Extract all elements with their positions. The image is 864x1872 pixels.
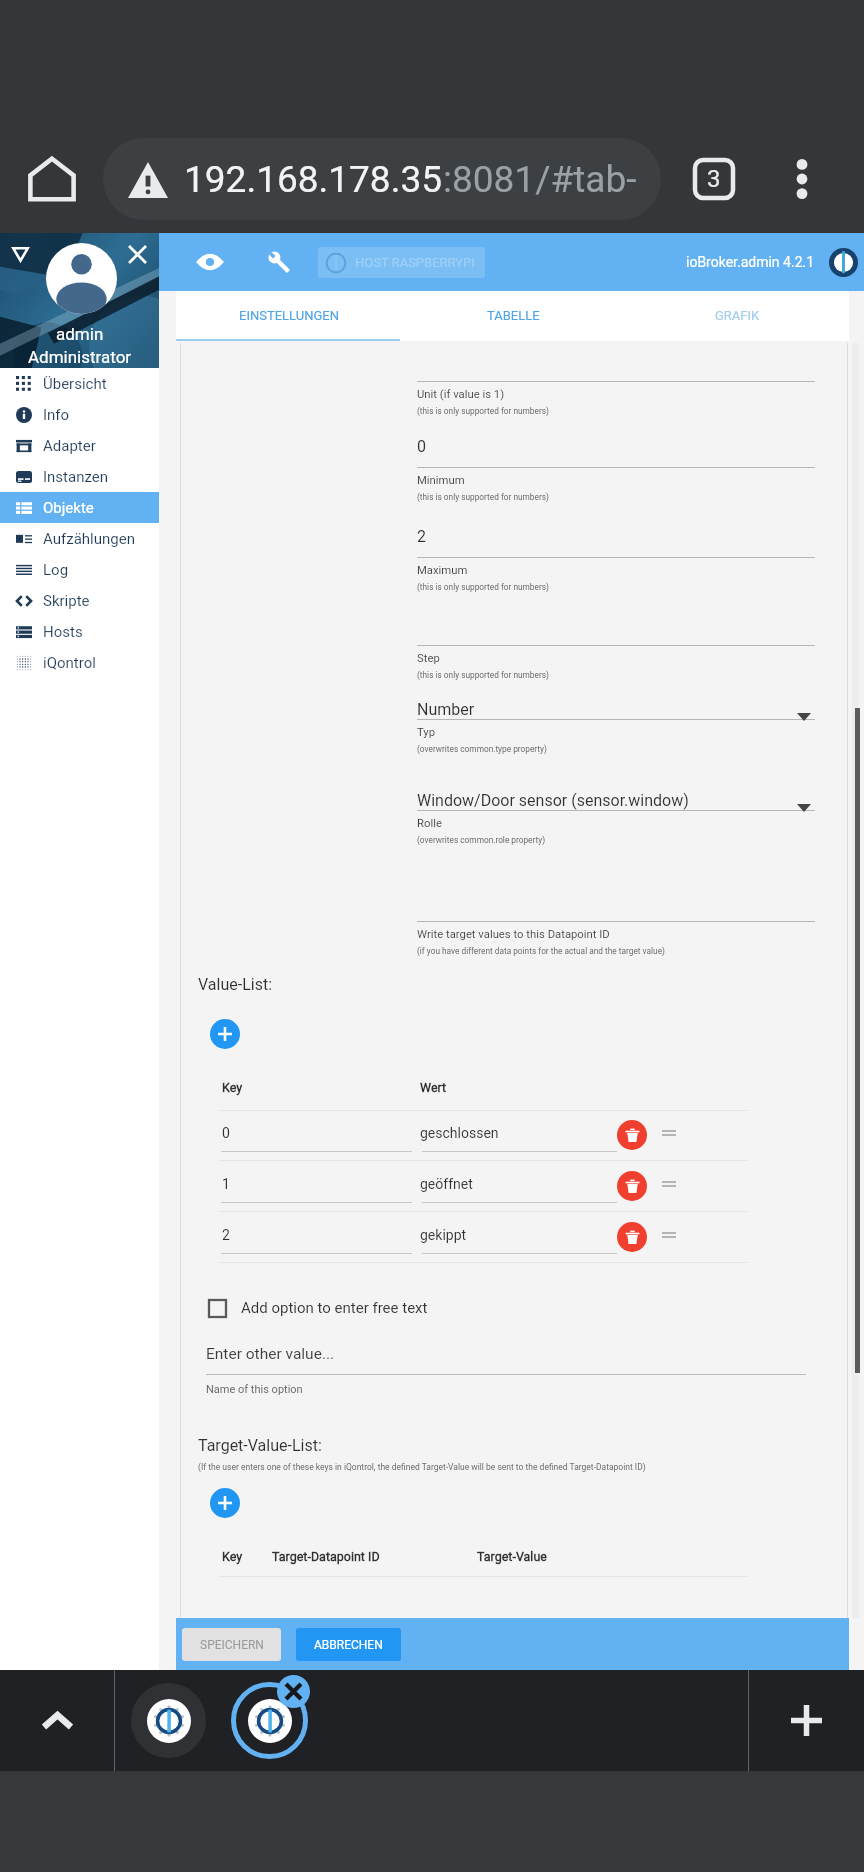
staticText: geöffnet [420, 1176, 473, 1192]
button[interactable]: Add entry [210, 1488, 240, 1518]
staticText: :8081/#tab- [443, 158, 637, 201]
staticText: 2 [222, 1227, 230, 1243]
button[interactable]: Instanzen [0, 461, 159, 492]
button[interactable]: Close menu [121, 238, 153, 270]
button[interactable]: TABELLE [401, 291, 625, 339]
staticText: SPEICHERN [200, 1638, 264, 1652]
staticText: (overwrites common.type property) [417, 744, 547, 754]
staticText: Write target values to this Datapoint ID [417, 928, 610, 941]
button[interactable]: Delete row [617, 1120, 647, 1150]
button[interactable]: Info [0, 399, 159, 430]
staticText: Objekte [43, 499, 94, 517]
staticText: Instanzen [43, 468, 109, 486]
staticText: (this is only supported for numbers) [417, 582, 549, 592]
button[interactable]: Close tab [277, 1675, 310, 1708]
staticText: ioBroker.admin 4.2.1 [686, 254, 815, 270]
staticText: 2 [417, 527, 426, 546]
staticText: 1 [222, 1176, 230, 1192]
staticText: (this is only supported for numbers) [417, 406, 549, 416]
staticText: (if you have different data points for t… [417, 946, 665, 956]
button[interactable]: Show/Hide values [191, 243, 229, 281]
staticText: Key [222, 1549, 243, 1564]
staticText: HOST RASPBERRYPI [355, 255, 475, 270]
staticText: Number [417, 700, 475, 719]
button[interactable]: Aufzählungen [0, 523, 159, 554]
button[interactable]: iQontrol [0, 647, 159, 678]
button[interactable]: Log [0, 554, 159, 585]
button[interactable]: Current ioBroker tab [231, 1682, 308, 1759]
staticText: 0 [222, 1125, 230, 1141]
staticText: EINSTELLUNGEN [239, 308, 339, 323]
staticText: Name of this option [206, 1383, 303, 1396]
staticText: Target-Value [477, 1549, 547, 1564]
button[interactable]: Open tabs: 3 [681, 146, 747, 212]
button[interactable]: GRAFIK [625, 291, 849, 339]
staticText: Adapter [43, 437, 96, 455]
staticText: Log [43, 561, 69, 579]
staticText: Step [417, 652, 440, 665]
staticText: Aufzählungen [43, 530, 135, 548]
staticText: Target-Value-List: [198, 1436, 322, 1455]
button[interactable]: ioBroker tab [131, 1683, 206, 1758]
staticText: 192.168.178.35 [184, 158, 443, 201]
staticText: (overwrites common.role property) [417, 835, 546, 845]
button[interactable]: Delete row [617, 1222, 647, 1252]
staticText: Rolle [417, 817, 442, 830]
button[interactable]: ABBRECHEN [296, 1628, 401, 1661]
button[interactable]: Open dropdown [790, 794, 818, 822]
staticText: Window/Door sensor (sensor.window) [417, 791, 689, 810]
staticText: gekippt [420, 1227, 467, 1243]
staticText: Add option to enter free text [241, 1299, 428, 1317]
button[interactable]: Collapse menu [4, 238, 36, 270]
button[interactable]: Delete row [617, 1171, 647, 1201]
button[interactable]: HOST RASPBERRYPI [318, 247, 485, 278]
button[interactable]: EINSTELLUNGEN [176, 291, 401, 339]
staticText: Key [222, 1080, 243, 1095]
button[interactable]: Settings [260, 243, 298, 281]
staticText: iQontrol [43, 654, 96, 672]
staticText: GRAFIK [715, 308, 760, 323]
staticText: Target-Datapoint ID [272, 1549, 380, 1564]
staticText: (this is only supported for numbers) [417, 492, 549, 502]
staticText: Minimum [417, 474, 465, 487]
button[interactable]: Skripte [0, 585, 159, 616]
staticText: 0 [417, 437, 426, 456]
button[interactable]: Übersicht [0, 368, 159, 399]
staticText: Übersicht [43, 375, 107, 393]
staticText: ABBRECHEN [314, 1638, 383, 1652]
button[interactable]: Adapter [0, 430, 159, 461]
button[interactable]: Add entry [210, 1019, 240, 1049]
staticText: Hosts [43, 623, 83, 641]
staticText: Maximum [417, 564, 468, 577]
button[interactable]: 192.168.178.35 [103, 138, 661, 220]
button[interactable]: Add option to enter free text [209, 1291, 539, 1325]
staticText: (If the user enters one of these keys in… [198, 1462, 646, 1472]
staticText: Enter other value... [206, 1345, 335, 1363]
button[interactable]: More options [771, 148, 833, 210]
staticText: TABELLE [487, 308, 540, 323]
staticText: Administrator [28, 347, 132, 367]
button[interactable]: Objekte [0, 492, 159, 523]
button[interactable]: SPEICHERN [182, 1628, 281, 1661]
staticText: Info [43, 406, 70, 424]
staticText: Typ [417, 726, 436, 739]
staticText: 3 [707, 165, 721, 193]
button[interactable]: Open dropdown [790, 703, 818, 731]
staticText: admin [56, 324, 104, 344]
staticText: (this is only supported for numbers) [417, 670, 549, 680]
button[interactable]: New tab [749, 1670, 864, 1771]
staticText: Wert [420, 1080, 447, 1095]
button[interactable]: Home [0, 133, 103, 225]
staticText: Skripte [43, 592, 90, 610]
button[interactable]: Hosts [0, 616, 159, 647]
staticText: Unit (if value is 1) [417, 388, 505, 401]
button[interactable]: Expand tabs [0, 1670, 114, 1771]
staticText: geschlossen [420, 1125, 499, 1141]
staticText: Value-List: [198, 975, 273, 994]
